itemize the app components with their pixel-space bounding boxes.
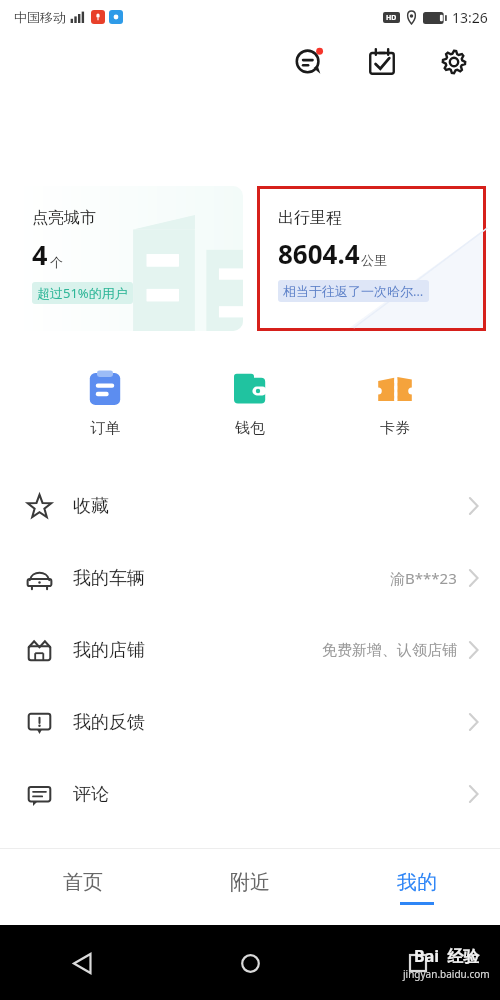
staticText: 卡券	[380, 419, 410, 438]
button[interactable]: Tasks	[360, 40, 404, 84]
staticText: 我的店铺	[73, 639, 145, 662]
staticText: 中国移动	[14, 9, 66, 25]
button[interactable]: 收藏	[0, 470, 500, 542]
staticText: 公里	[361, 252, 387, 268]
staticText: 我的	[397, 870, 437, 895]
staticText: 13:26	[452, 8, 488, 27]
staticText: 首页	[63, 870, 103, 895]
staticText: 我的车辆	[73, 567, 145, 590]
button[interactable]: 评论	[0, 758, 500, 830]
button[interactable]: Messages	[288, 40, 332, 84]
staticText: 钱包	[235, 419, 265, 438]
button[interactable]: 我的	[333, 849, 500, 925]
staticText: 相当于往返了一次哈尔…	[283, 282, 424, 300]
button[interactable]: 出行里程	[260, 189, 483, 328]
staticText: 渝B***23	[390, 568, 457, 588]
button[interactable]: Home	[228, 941, 272, 985]
button[interactable]: 我的店铺	[0, 614, 500, 686]
staticText: 附近	[230, 870, 270, 895]
staticText: 订单	[90, 419, 120, 438]
staticText: Bai 经验	[414, 945, 480, 967]
button[interactable]: 钱包	[200, 365, 300, 442]
button[interactable]: 附近	[166, 849, 333, 925]
staticText: 个	[50, 254, 63, 270]
staticText: 超过51%的用户	[37, 284, 128, 302]
button[interactable]: Settings	[432, 40, 476, 84]
button[interactable]: 点亮城市	[14, 186, 243, 331]
staticText: 出行里程	[278, 208, 342, 228]
staticText: 4	[32, 236, 48, 273]
staticText: 点亮城市	[32, 208, 96, 228]
staticText: HD	[386, 13, 397, 23]
button[interactable]: 卡券	[345, 365, 445, 442]
staticText: 8604.4	[278, 236, 360, 271]
button[interactable]: 订单	[55, 365, 155, 442]
button[interactable]: Back	[60, 941, 104, 985]
staticText: 我的反馈	[73, 711, 145, 734]
staticText: 免费新增、认领店铺	[322, 641, 457, 660]
button[interactable]: 我的车辆	[0, 542, 500, 614]
button[interactable]: Recents	[396, 941, 440, 985]
button[interactable]: 首页	[0, 849, 166, 925]
button[interactable]: 我的反馈	[0, 686, 500, 758]
staticText: 评论	[73, 783, 109, 806]
staticText: 收藏	[73, 495, 109, 518]
staticText: jingyan.baidu.com	[403, 967, 490, 981]
